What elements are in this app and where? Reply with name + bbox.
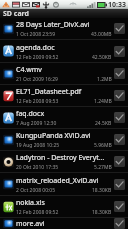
staticText: 18.30KB <box>92 209 112 216</box>
button[interactable]: Select file <box>114 134 125 145</box>
button[interactable]: Ladytron - Destroy Everyt... <box>0 151 128 173</box>
staticText: 5.27MB <box>94 164 112 171</box>
staticText: 12 Feb 2008 09:53 <box>16 98 59 105</box>
staticText: 28 Days Later_DivX.avi <box>16 20 90 30</box>
staticText: 12 Feb 2008 09:52 <box>16 209 59 216</box>
staticText: C4.wmv <box>16 65 42 75</box>
button[interactable]: Select file <box>114 112 125 123</box>
button[interactable]: matrix_reloaded_XviD.avi <box>0 173 128 196</box>
button[interactable]: 28 Days Later_DivX.avi <box>0 18 128 40</box>
staticText: matrix_reloaded_XviD.avi <box>16 176 99 186</box>
staticText: nokia.xls <box>16 198 45 208</box>
button[interactable]: nokia.xls <box>0 196 128 218</box>
staticText: 1 Oct 2008 23:59 <box>16 31 56 38</box>
staticText: 7 Aug 2009 12:30 <box>16 120 57 127</box>
button[interactable]: Select file <box>114 179 125 190</box>
staticText: faq.docx <box>16 109 45 119</box>
staticText: 18.30KB <box>92 187 112 194</box>
staticText: 19 Aug 2008 10:25 <box>16 142 60 149</box>
staticText: KungpuPanda XViD.avi <box>16 131 91 141</box>
staticText: 1.24MB <box>94 98 112 105</box>
button[interactable]: C4.wmv <box>0 63 128 85</box>
button[interactable]: more.avi <box>0 218 128 229</box>
button[interactable]: Select file <box>114 201 125 212</box>
button[interactable]: KungpuPanda XViD.avi <box>0 129 128 151</box>
button[interactable]: EL71_Datasheet.pdf <box>0 85 128 107</box>
button[interactable]: Select file <box>114 218 125 229</box>
staticText: 10:33 <box>108 0 126 9</box>
staticText: SD card <box>3 9 30 18</box>
staticText: 21 Oct 2009 16:29 <box>16 76 58 83</box>
staticText: Ladytron - Destroy Everyt... <box>16 153 105 163</box>
button[interactable]: Select file <box>114 23 125 34</box>
staticText: agenda.doc <box>16 43 55 53</box>
staticText: 1.2MB <box>97 76 112 83</box>
staticText: 20 Okt 2010 17:35 <box>16 164 59 171</box>
staticText: 24.5KB <box>95 120 112 127</box>
staticText: 42.50KB <box>92 54 112 61</box>
staticText: 5.96MB <box>94 142 112 149</box>
staticText: more.avi <box>16 219 45 229</box>
button[interactable]: Select file <box>114 68 125 79</box>
staticText: 2 Oct 2008 00:05 <box>16 187 56 194</box>
button[interactable]: Select file <box>114 156 125 167</box>
button[interactable]: agenda.doc <box>0 40 128 63</box>
staticText: EL71_Datasheet.pdf <box>16 87 82 97</box>
button[interactable]: Select file <box>114 90 125 101</box>
staticText: 12 Feb 2009 09:52 <box>16 54 59 61</box>
staticText: 43.00MB <box>91 31 112 38</box>
button[interactable]: faq.docx <box>0 107 128 129</box>
button[interactable]: Select file <box>114 46 125 57</box>
